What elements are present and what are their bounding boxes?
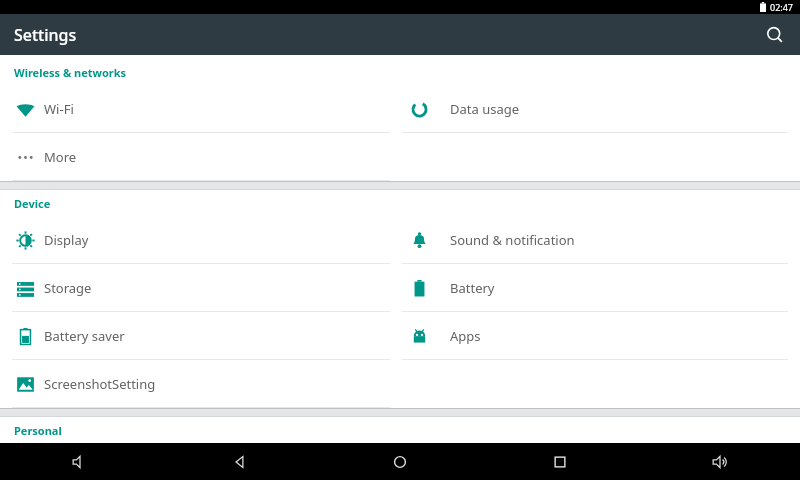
staticText: 02:47: [770, 1, 794, 13]
staticText: Personal: [14, 423, 62, 438]
button[interactable]: Back: [160, 443, 320, 480]
staticText: Apps: [450, 327, 481, 345]
button[interactable]: Recents: [480, 443, 640, 480]
button[interactable]: Display: [0, 216, 400, 264]
button[interactable]: Volume up: [640, 443, 800, 480]
button[interactable]: Search: [758, 18, 792, 52]
button[interactable]: ScreenshotSetting: [0, 360, 400, 408]
button[interactable]: Home: [320, 443, 480, 480]
staticText: Battery saver: [44, 327, 125, 345]
button[interactable]: More: [0, 133, 400, 181]
button[interactable]: Storage: [0, 264, 400, 312]
staticText: Settings: [14, 24, 77, 46]
staticText: Device: [14, 196, 51, 211]
staticText: Wi-Fi: [44, 100, 74, 118]
button[interactable]: Apps: [400, 312, 800, 360]
staticText: Display: [44, 231, 89, 249]
staticText: ScreenshotSetting: [44, 375, 156, 393]
staticText: Storage: [44, 279, 92, 297]
staticText: Data usage: [450, 100, 520, 118]
staticText: Wireless & networks: [14, 65, 127, 80]
button[interactable]: Wi-Fi: [0, 85, 400, 133]
button[interactable]: Battery: [400, 264, 800, 312]
button[interactable]: Volume down: [0, 443, 160, 480]
staticText: Sound & notification: [450, 231, 575, 249]
staticText: More: [44, 148, 77, 166]
button[interactable]: Battery saver: [0, 312, 400, 360]
button[interactable]: Sound & notification: [400, 216, 800, 264]
button[interactable]: Data usage: [400, 85, 800, 133]
staticText: Battery: [450, 279, 495, 297]
